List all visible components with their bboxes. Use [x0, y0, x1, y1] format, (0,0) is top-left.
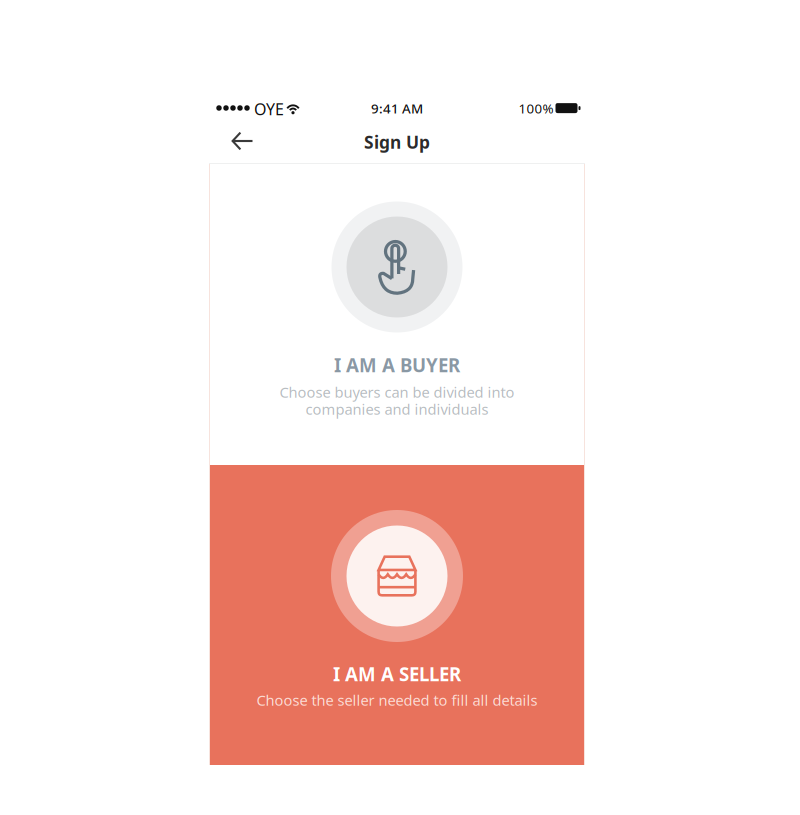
- staticText: Choose the seller needed to fill all det…: [256, 690, 537, 710]
- staticText: I AM A BUYER: [334, 353, 460, 377]
- button[interactable]: I AM A SELLER: [209, 465, 585, 765]
- staticText: 9:41 AM: [371, 99, 423, 117]
- button[interactable]: I AM A BUYER: [209, 163, 585, 465]
- staticText: Sign Up: [364, 130, 430, 153]
- staticText: I AM A SELLER: [333, 662, 461, 686]
- staticText: Choose buyers can be divided into: [279, 382, 514, 402]
- button[interactable]: Back: [217, 119, 267, 162]
- staticText: 100%: [518, 99, 553, 117]
- staticText: OYE: [254, 98, 284, 120]
- staticText: companies and individuals: [305, 399, 488, 419]
